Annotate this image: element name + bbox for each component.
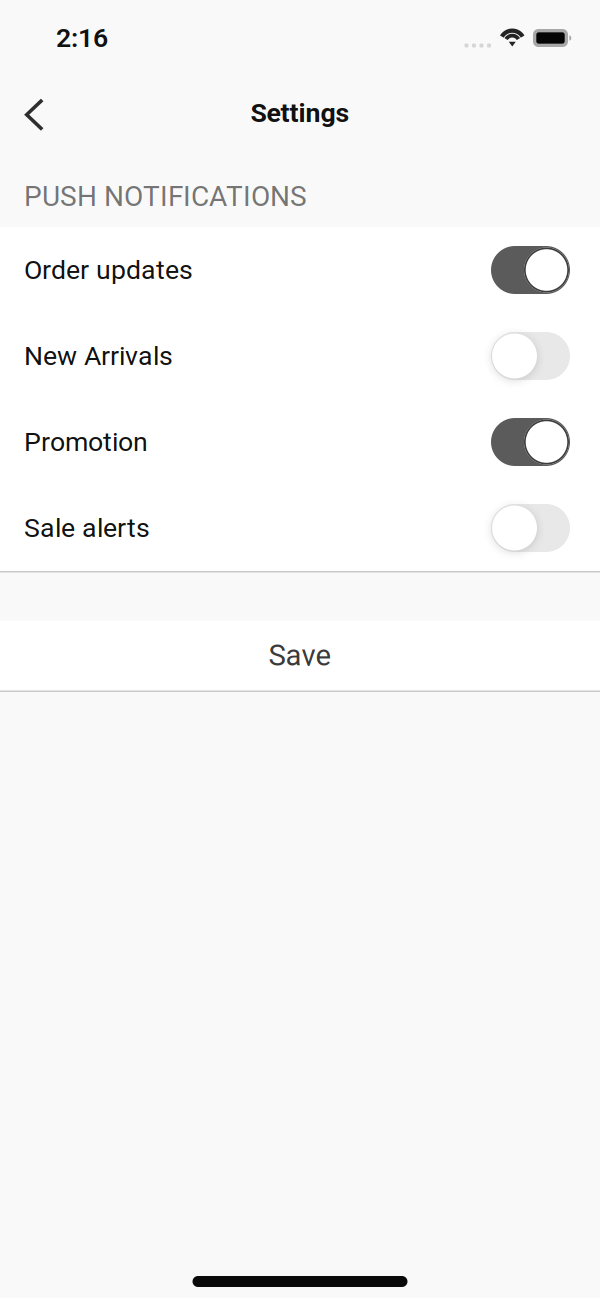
staticText: 2:16 [56, 23, 108, 53]
button[interactable]: Promotion [0, 399, 600, 485]
staticText: Sale alerts [24, 513, 150, 543]
staticText: Settings [250, 98, 349, 128]
staticText: New Arrivals [24, 341, 173, 371]
staticText: Save [268, 639, 331, 672]
button[interactable]: Sale alerts [0, 485, 600, 571]
staticText: Order updates [24, 255, 193, 285]
button[interactable]: Order updates [0, 227, 600, 313]
button[interactable]: Save [0, 620, 600, 690]
staticText: Promotion [24, 427, 148, 457]
staticText: PUSH NOTIFICATIONS [24, 180, 307, 212]
button[interactable]: Back [10, 86, 58, 140]
button[interactable]: New Arrivals [0, 313, 600, 399]
